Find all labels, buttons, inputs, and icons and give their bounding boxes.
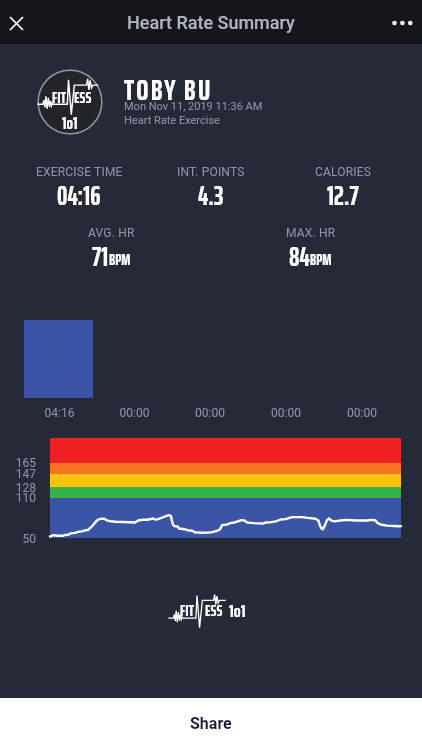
staticText: Heart Rate Summary	[127, 12, 295, 33]
staticText: AVG. HR	[88, 226, 135, 240]
staticText: 12.7	[327, 175, 359, 216]
staticText: 04:16	[22, 406, 97, 420]
staticText: ESS	[74, 85, 92, 110]
staticText: 71	[92, 236, 109, 277]
staticText: 1o1	[62, 110, 78, 135]
staticText: ESS	[205, 598, 223, 623]
button[interactable]: Share	[0, 698, 422, 750]
staticText: BPM	[310, 248, 332, 272]
staticText: 147	[0, 467, 36, 481]
staticText: TOBY BU	[124, 67, 213, 113]
staticText: 00:00	[97, 406, 172, 420]
staticText: 128	[0, 481, 36, 495]
staticText: MAX. HR	[286, 226, 336, 240]
staticText: 165	[0, 456, 36, 470]
staticText: FIT	[52, 85, 67, 110]
staticText: CALORIES	[315, 165, 372, 179]
staticText: 1o1	[229, 597, 246, 625]
staticText: 4.3	[198, 175, 224, 216]
staticText: 00:00	[324, 406, 400, 420]
staticText: 00:00	[248, 406, 324, 420]
staticText: 50	[0, 532, 36, 546]
staticText: 84	[289, 236, 310, 277]
staticText: 00:00	[172, 406, 248, 420]
staticText: 110	[0, 491, 36, 505]
staticText: Heart Rate Exercise	[124, 114, 220, 127]
staticText: INT. POINTS	[177, 165, 245, 179]
staticText: FIT	[180, 598, 195, 623]
staticText: 04:16	[57, 175, 101, 216]
staticText: Share	[190, 714, 232, 733]
button[interactable]: Close	[0, 0, 44, 44]
staticText: BPM	[109, 248, 131, 272]
button[interactable]: More options	[378, 0, 422, 44]
staticText: Mon Nov 11, 2019 11:36 AM	[124, 100, 263, 113]
staticText: EXERCISE TIME	[36, 165, 123, 179]
